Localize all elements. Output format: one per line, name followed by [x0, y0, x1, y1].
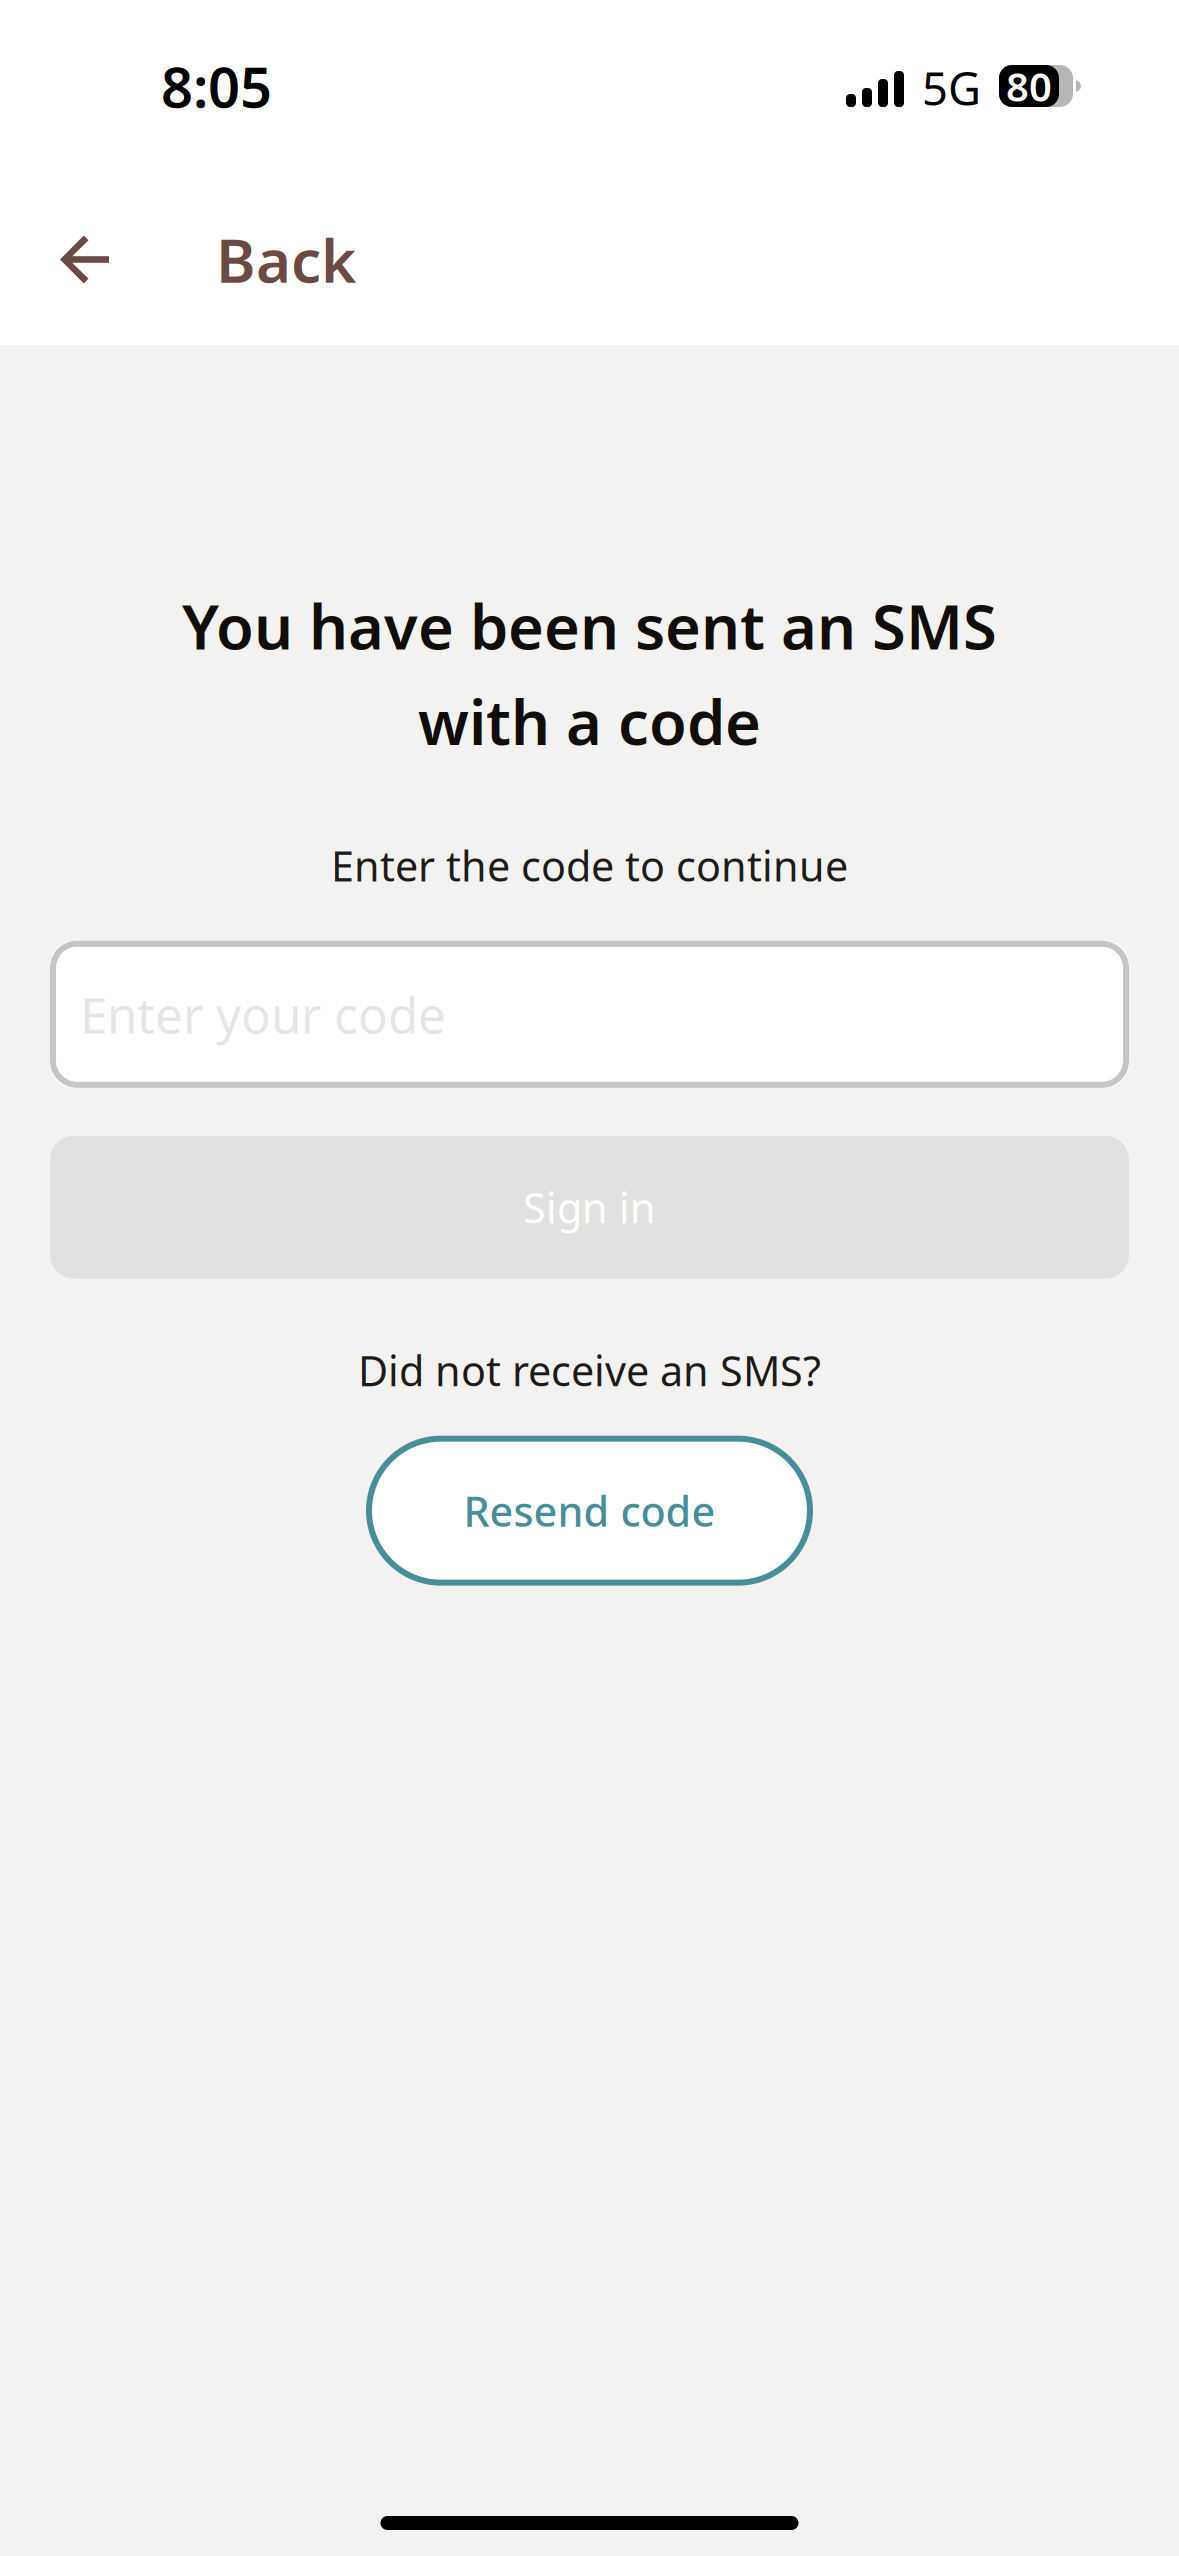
button[interactable]: Back — [0, 174, 460, 345]
staticText: with a code — [418, 680, 761, 762]
staticText: Enter your code — [80, 981, 446, 1047]
staticText: 8:05 — [161, 49, 272, 123]
staticText: 5G — [922, 58, 981, 118]
staticText: Resend code — [463, 1483, 715, 1538]
staticText: Enter the code to continue — [331, 838, 848, 893]
staticText: 80 — [1006, 59, 1052, 112]
staticText: Did not receive an SMS? — [358, 1343, 821, 1398]
staticText: You have been sent an SMS — [182, 585, 997, 666]
button[interactable]: Resend code — [366, 1436, 813, 1586]
staticText: Back — [216, 220, 356, 299]
staticText: Sign in — [523, 1180, 656, 1235]
